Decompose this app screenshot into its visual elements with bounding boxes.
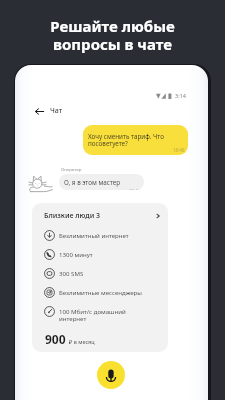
staticText: 18:49 [129, 187, 140, 190]
button[interactable]: Близкие люди 3 [32, 203, 168, 352]
staticText: Чат [50, 106, 63, 116]
staticText: 900 [45, 331, 66, 347]
staticText: О, я в этом мастер [64, 178, 121, 187]
staticText: 18:48 [173, 147, 185, 153]
staticText: 100 Мбит/с домашний интернет [59, 307, 126, 322]
staticText: Безлимитный интернет [59, 231, 129, 239]
staticText: Хочу сменить тариф. Что посоветуете? [88, 132, 182, 148]
staticText: Решайте любые вопросы в чате [0, 16, 225, 55]
staticText: 300 SMS [59, 269, 84, 277]
staticText: 1300 минут [59, 250, 93, 258]
button[interactable]: Back [33, 105, 45, 117]
staticText: Оператор [61, 166, 82, 172]
staticText: Близкие люди 3 [44, 211, 101, 221]
button[interactable]: Voice input [97, 361, 125, 389]
staticText: 3:14 [175, 92, 186, 99]
staticText: Безлимитные мессенджеры [59, 288, 142, 296]
staticText: ₽ в месяц [69, 338, 95, 345]
